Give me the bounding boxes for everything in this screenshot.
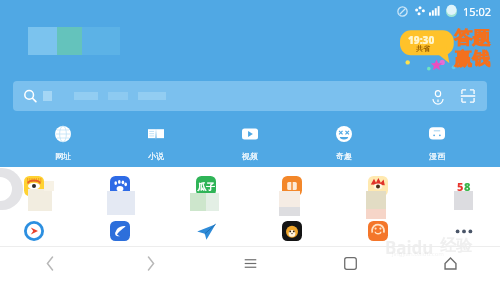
staticText: 答题 bbox=[454, 27, 490, 50]
button[interactable]: Baidu bbox=[110, 176, 130, 196]
button[interactable]: Send bbox=[196, 221, 216, 241]
staticText: jingyan.baidu.com bbox=[392, 250, 444, 258]
staticText: 共省 bbox=[416, 44, 430, 53]
button[interactable]: 58.com bbox=[454, 176, 474, 196]
button[interactable]: 小说 bbox=[125, 124, 187, 163]
staticText: 经验 bbox=[440, 236, 472, 256]
staticText: 瓜子 bbox=[197, 181, 215, 192]
staticText: 小说 bbox=[148, 151, 164, 161]
button[interactable]: Weibo bbox=[368, 176, 388, 196]
staticText: 15:02 bbox=[463, 4, 492, 19]
button[interactable]: More bbox=[454, 221, 474, 241]
staticText: 8 bbox=[464, 179, 471, 194]
button[interactable]: Menu bbox=[200, 246, 300, 281]
button[interactable]: 19:30 bbox=[400, 24, 496, 72]
button[interactable]: Voice search bbox=[13, 81, 487, 111]
button[interactable]: App bbox=[368, 221, 388, 241]
button[interactable]: 网址 bbox=[32, 124, 94, 163]
staticText: 网址 bbox=[55, 151, 71, 161]
button[interactable]: Dolphin Browser bbox=[110, 221, 130, 241]
button[interactable]: App bbox=[282, 176, 302, 196]
button[interactable]: Back bbox=[0, 246, 100, 281]
staticText: Baidu bbox=[385, 236, 434, 259]
button[interactable]: 奇趣 bbox=[313, 124, 375, 163]
button[interactable]: 视频 bbox=[219, 124, 281, 163]
button[interactable]: Scan QR code bbox=[457, 85, 479, 107]
staticText: 赢钱 bbox=[454, 48, 490, 71]
staticText: 奇趣 bbox=[336, 151, 352, 161]
button[interactable]: Home bbox=[400, 246, 500, 281]
staticText: 5 bbox=[457, 179, 464, 194]
staticText: 视频 bbox=[242, 151, 258, 161]
button[interactable]: Toutiao bbox=[24, 176, 44, 196]
button[interactable]: App bbox=[282, 221, 302, 241]
button[interactable]: Xunlei bbox=[24, 221, 44, 241]
button[interactable]: Forward bbox=[100, 246, 200, 281]
staticText: 漫画 bbox=[429, 151, 445, 161]
button[interactable]: Tabs bbox=[300, 246, 400, 281]
staticText: 19:30 bbox=[408, 33, 435, 47]
button[interactable]: Guazi bbox=[196, 176, 216, 196]
button[interactable]: 漫画 bbox=[406, 124, 468, 163]
button[interactable]: Voice search bbox=[427, 85, 449, 107]
